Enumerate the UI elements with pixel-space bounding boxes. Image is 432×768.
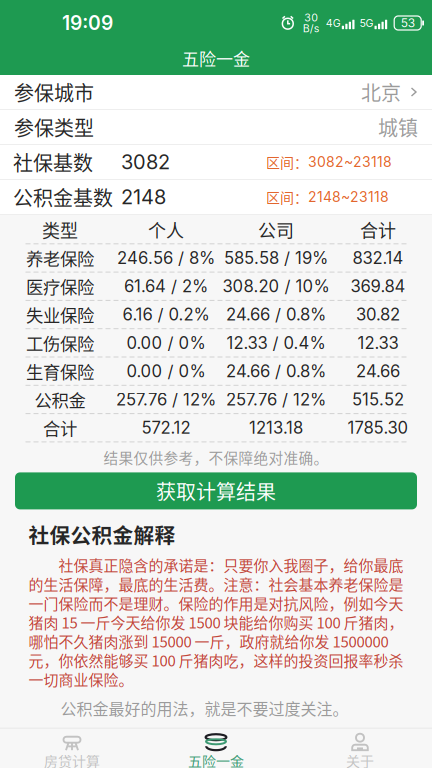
staticText: 生育保险 [26,359,94,384]
staticText: 社保真正隐含的承诺是：只要你入我圈子，给你最底的生活保障，最底的生活费。注意：社… [28,555,403,688]
staticText: 获取计算结果 [156,476,276,505]
staticText: 公司 [258,217,294,243]
staticText: 515.52 [352,389,404,410]
staticText: 公积金基数 [13,182,113,211]
staticText: 1213.18 [249,418,303,438]
staticText: 区间： [266,187,308,207]
staticText: 308.20 / 10% [222,276,329,296]
staticText: 区间： [266,152,308,172]
button[interactable]: 参保城市 [0,75,432,110]
staticText: 61.64 / 2% [124,276,208,296]
staticText: 养老保险 [26,245,94,270]
staticText: 53 [401,16,415,30]
button[interactable]: 获取计算结果 [15,472,417,509]
button[interactable]: 参保类型 [0,110,432,145]
staticText: 24.66 / 0.8% [226,304,326,325]
staticText: 合计 [360,217,396,243]
staticText: 12.33 [357,333,398,353]
staticText: 结果仅供参考，不保障绝对准确。 [103,447,328,468]
staticText: 257.76 / 12% [116,389,216,410]
staticText: 失业保险 [26,302,94,327]
staticText: 社保基数 [13,147,93,176]
staticText: 2148~23118 [308,188,389,205]
staticText: 6.16 / 0.2% [122,304,209,325]
staticText: 公积金 [34,387,85,412]
staticText: 房贷计算 [44,753,100,768]
staticText: 参保城市 [14,77,94,106]
staticText: 4G [326,16,341,29]
staticText: 北京 [361,77,401,106]
staticText: 3082~23118 [308,153,392,170]
staticText: 参保类型 [14,112,94,141]
staticText: 医疗保险 [26,274,94,299]
staticText: 30.82 [356,304,400,325]
staticText: 585.58 / 19% [224,248,328,268]
staticText: 24.66 [356,361,400,381]
staticText: 类型 [42,217,78,243]
staticText: 0.00 / 0% [126,333,205,353]
staticText: 257.76 / 12% [226,389,326,410]
staticText: 五险一金 [182,47,250,68]
staticText: 社保公积金解释 [28,519,175,549]
staticText: 30 [304,11,318,24]
staticText: 工伤保险 [26,330,94,355]
staticText: 5G [359,16,373,29]
staticText: 246.56 / 8% [117,248,215,268]
staticText: 19:09 [62,11,113,35]
staticText: B/s [303,22,320,35]
staticText: 572.12 [141,418,190,438]
staticText: 3082 [121,150,170,174]
staticText: 1785.30 [347,418,408,438]
button[interactable]: 房贷计算 [0,729,144,768]
staticText: 369.84 [350,276,405,296]
button[interactable]: 五险一金 [144,729,288,768]
staticText: 公积金最好的用法，就是不要过度关注。 [28,696,348,720]
button[interactable]: 关于 [288,729,432,768]
staticText: 832.14 [352,248,403,268]
staticText: 关于 [346,753,374,768]
staticText: 2148 [121,185,166,209]
staticText: 12.33 / 0.4% [226,333,325,353]
staticText: 24.66 / 0.8% [226,361,326,381]
staticText: 合计 [43,415,77,440]
staticText: 城镇 [378,112,418,141]
staticText: 个人 [148,217,184,243]
staticText: 五险一金 [188,753,244,768]
staticText: 0.00 / 0% [126,361,205,381]
